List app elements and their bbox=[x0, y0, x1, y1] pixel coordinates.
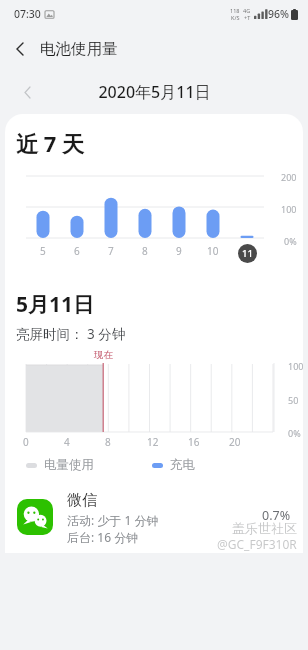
staticText: 10 bbox=[207, 244, 219, 258]
button[interactable]: Previous day bbox=[10, 75, 44, 109]
staticText: 6 bbox=[74, 244, 80, 258]
staticText: 活动: 少于 1 分钟 bbox=[67, 512, 159, 528]
staticText: 7 bbox=[108, 244, 114, 258]
staticText: 0.7% bbox=[262, 507, 291, 524]
staticText: 5月11日 bbox=[16, 290, 95, 319]
button[interactable]: Back bbox=[0, 29, 40, 69]
staticText: 5 bbox=[40, 244, 46, 258]
staticText: 16 bbox=[188, 435, 200, 449]
staticText: 50 bbox=[288, 394, 299, 406]
staticText: 0% bbox=[288, 427, 301, 439]
staticText: 12 bbox=[147, 435, 159, 449]
staticText: 96% bbox=[268, 7, 289, 21]
staticText: 2020年5月11日 bbox=[98, 81, 211, 103]
staticText: 200 bbox=[281, 171, 297, 183]
staticText: 电量使用 bbox=[44, 457, 94, 473]
staticText: 后台: 16 分钟 bbox=[67, 529, 139, 545]
button[interactable]: 11 bbox=[238, 244, 257, 263]
button[interactable]: 微信 bbox=[5, 487, 303, 553]
staticText: +T bbox=[244, 14, 251, 21]
staticText: 电池使用量 bbox=[40, 39, 118, 59]
staticText: 100 bbox=[281, 203, 297, 215]
staticText: 0 bbox=[23, 435, 29, 449]
staticText: 8 bbox=[105, 435, 111, 449]
staticText: 20 bbox=[229, 435, 241, 449]
staticText: 现在 bbox=[94, 349, 113, 361]
staticText: 11 bbox=[242, 247, 253, 260]
staticText: 9 bbox=[176, 244, 182, 258]
staticText: 4 bbox=[64, 435, 70, 449]
staticText: @GC_F9F310R bbox=[217, 536, 297, 552]
staticText: 近 7 天 bbox=[16, 128, 85, 158]
staticText: 118 bbox=[230, 7, 240, 14]
staticText: 盖乐世社区 bbox=[232, 520, 297, 536]
staticText: 07:30 bbox=[14, 7, 41, 21]
button[interactable]: 充电 bbox=[152, 457, 195, 473]
staticText: 亮屏时间： 3 分钟 bbox=[16, 325, 126, 343]
staticText: K/S bbox=[231, 14, 240, 21]
staticText: 微信 bbox=[67, 491, 97, 510]
button[interactable]: 电量使用 bbox=[26, 457, 94, 473]
staticText: 8 bbox=[142, 244, 148, 258]
staticText: 4G bbox=[243, 7, 251, 14]
staticText: 充电 bbox=[170, 457, 195, 473]
staticText: 100 bbox=[288, 360, 303, 372]
staticText: 0% bbox=[284, 235, 297, 247]
